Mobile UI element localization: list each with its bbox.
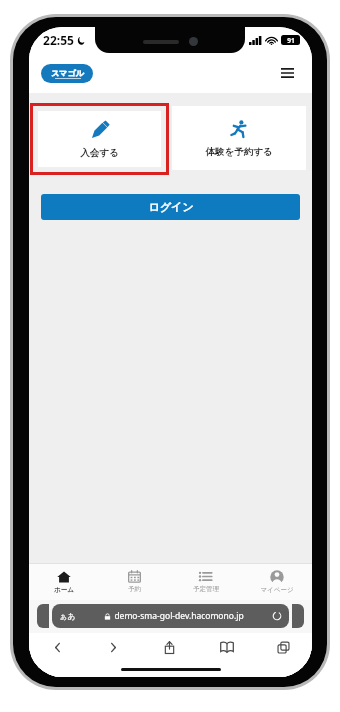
button[interactable]: 予定管理 — [170, 563, 241, 600]
button[interactable]: スマゴル ホーム — [41, 64, 93, 83]
button[interactable]: Share — [141, 633, 198, 661]
button[interactable]: ぁあ — [52, 604, 289, 628]
button[interactable]: 予約 — [99, 563, 170, 600]
staticText: ログイン — [148, 200, 194, 214]
staticText: 予約 — [128, 585, 141, 593]
staticText: 体験を予約する — [205, 146, 273, 158]
button[interactable]: Menu — [274, 60, 300, 86]
button[interactable]: ログイン — [41, 194, 300, 220]
staticText: スマゴル — [51, 68, 84, 78]
button[interactable]: 入会する — [38, 111, 161, 167]
button[interactable]: Bookmarks — [198, 633, 255, 661]
staticText: 予定管理 — [193, 585, 219, 593]
button[interactable]: マイページ — [241, 563, 312, 600]
button[interactable]: Forward — [85, 633, 141, 661]
staticText: マイページ — [260, 586, 294, 594]
staticText: 入会する — [80, 147, 119, 159]
button[interactable]: Back — [29, 633, 85, 661]
button[interactable]: Tabs — [255, 633, 312, 661]
staticText: ホーム — [54, 586, 74, 594]
button[interactable]: ホーム — [29, 563, 99, 600]
button[interactable]: 体験を予約する — [172, 106, 306, 170]
staticText: ぁあ — [59, 611, 76, 621]
staticText: demo-sma-gol-dev.hacomono.jp — [114, 610, 244, 622]
staticText: 22:55 — [43, 32, 74, 48]
staticText: 91 — [287, 36, 295, 45]
